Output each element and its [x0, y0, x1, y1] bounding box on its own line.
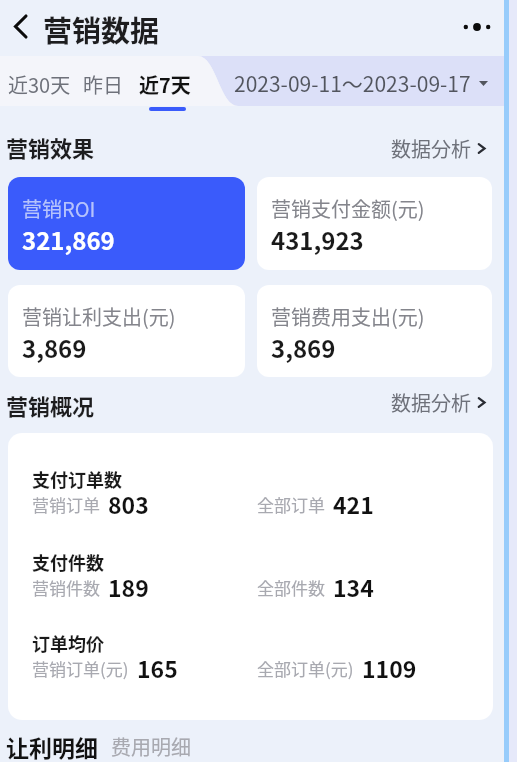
staticText: 营销效果	[6, 131, 95, 163]
staticText: 营销让利支出(元)	[22, 302, 176, 331]
staticText: 803	[108, 487, 149, 520]
staticText: 321,869	[22, 222, 115, 257]
staticText: 昨日	[83, 70, 123, 99]
button[interactable]: 数据分析	[391, 134, 487, 163]
button[interactable]: 近30天	[1, 67, 78, 114]
staticText: 数据分析	[391, 134, 471, 163]
staticText: 费用明细	[111, 732, 191, 761]
staticText: 1109	[362, 651, 417, 684]
button[interactable]: 营销费用支出(元)	[257, 285, 492, 377]
staticText: 431,923	[271, 222, 364, 257]
staticText: 全部订单(元)	[257, 656, 354, 681]
staticText: 营销订单(元)	[32, 656, 129, 681]
staticText: 让利明细	[6, 730, 98, 762]
button[interactable]: 2023-09-11～2023-09-17	[234, 68, 488, 98]
staticText: 近30天	[8, 70, 71, 99]
staticText: 支付件数	[32, 549, 104, 575]
staticText: 营销数据	[43, 8, 160, 50]
staticText: 189	[108, 570, 149, 603]
button[interactable]: 营销让利支出(元)	[8, 285, 245, 377]
staticText: 数据分析	[391, 388, 471, 417]
staticText: 营销费用支出(元)	[271, 302, 425, 331]
button[interactable]: 营销ROI	[8, 177, 245, 270]
staticText: 3,869	[271, 330, 336, 365]
staticText: 2023-09-11～2023-09-17	[234, 68, 471, 98]
staticText: 营销支付金额(元)	[271, 194, 425, 223]
button[interactable]: 近7天	[132, 67, 198, 114]
button[interactable]: 昨日	[76, 67, 130, 114]
staticText: 全部件数	[257, 575, 325, 600]
staticText: 营销件数	[32, 575, 100, 600]
button[interactable]: 费用明细	[111, 732, 191, 762]
button[interactable]: 数据分析	[391, 388, 487, 417]
staticText: 3,869	[22, 330, 87, 365]
button[interactable]: More options	[456, 6, 498, 48]
staticText: 营销ROI	[22, 194, 96, 223]
staticText: 165	[137, 651, 178, 684]
staticText: 支付订单数	[32, 466, 122, 492]
staticText: 134	[333, 570, 374, 603]
button[interactable]: Back	[0, 6, 40, 46]
button[interactable]: 营销支付金额(元)	[257, 177, 492, 270]
staticText: 全部订单	[257, 492, 325, 517]
staticText: 营销概况	[6, 389, 95, 421]
button[interactable]: 让利明细	[6, 730, 98, 762]
staticText: 营销订单	[32, 492, 100, 517]
staticText: 421	[333, 487, 374, 520]
staticText: 近7天	[139, 70, 191, 99]
staticText: 订单均价	[32, 630, 104, 656]
